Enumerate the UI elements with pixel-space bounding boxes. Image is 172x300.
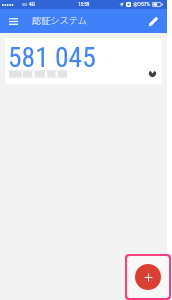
staticText: 581 045: [8, 41, 96, 73]
staticText: 認証システム: [32, 13, 87, 26]
button[interactable]: Add account: [135, 264, 161, 290]
button[interactable]: Menu: [3, 11, 23, 31]
button[interactable]: 581 045: [5, 38, 162, 84]
staticText: 15:59: [78, 2, 90, 7]
button[interactable]: Edit: [143, 11, 163, 31]
staticText: 57%: [141, 2, 150, 8]
staticText: 4G: [29, 2, 35, 8]
staticText: au: [22, 2, 28, 7]
